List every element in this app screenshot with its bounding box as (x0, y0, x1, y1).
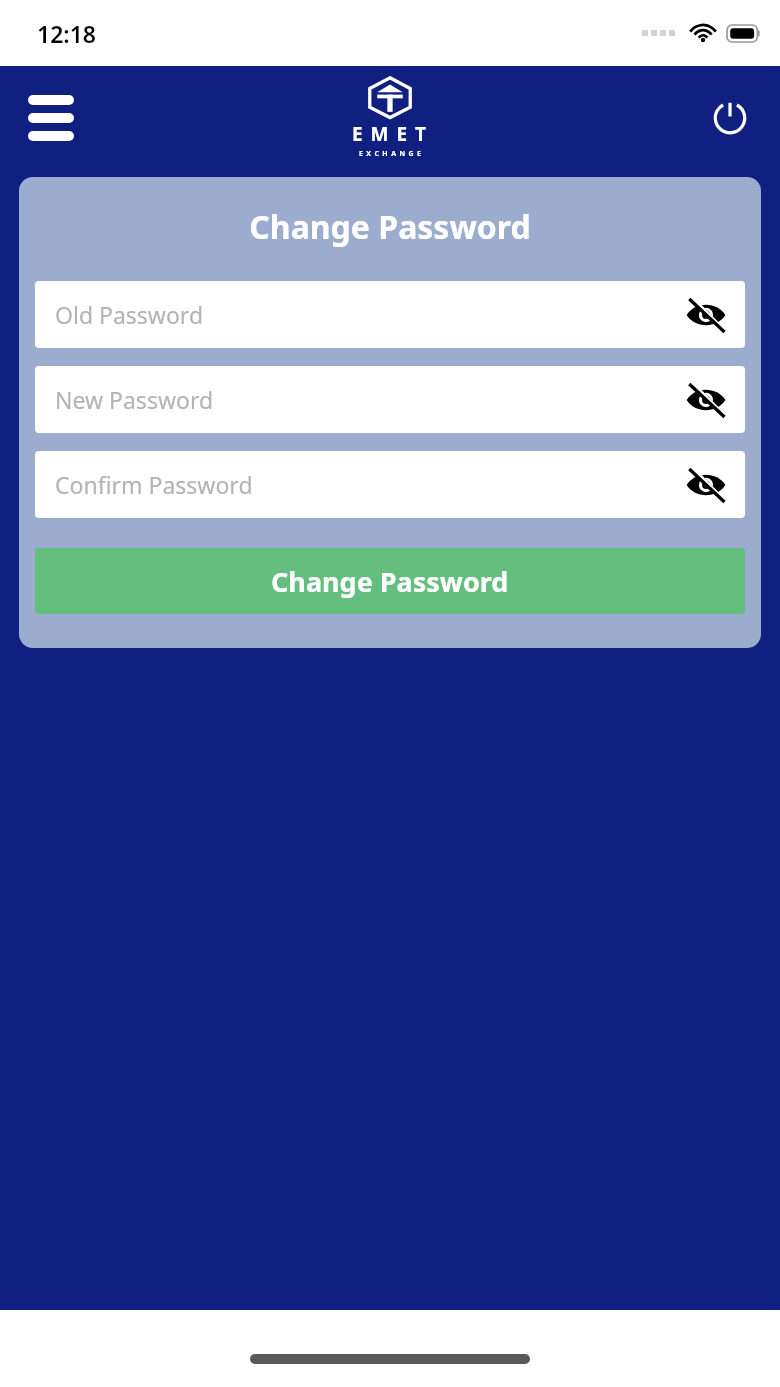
staticText: 12:18 (37, 18, 96, 49)
button[interactable]: Menu (22, 93, 80, 143)
staticText: New Password (55, 384, 681, 415)
staticText: Change Password (19, 205, 761, 249)
staticText: Change Password (271, 563, 509, 600)
staticText: E M E T (352, 121, 428, 147)
button[interactable]: Confirm Password (35, 451, 745, 518)
staticText: Old Password (55, 299, 681, 330)
staticText: E X C H A N G E (359, 149, 422, 159)
button[interactable]: Change Password (35, 548, 745, 614)
button[interactable]: Old Password (35, 281, 745, 348)
button[interactable]: Show password (681, 375, 731, 425)
button[interactable]: Show password (681, 460, 731, 510)
button[interactable]: Show password (681, 290, 731, 340)
button[interactable]: Log out (704, 92, 756, 144)
staticText: Confirm Password (55, 469, 681, 500)
button[interactable]: New Password (35, 366, 745, 433)
staticText: UpdateStar.com (233, 571, 547, 628)
